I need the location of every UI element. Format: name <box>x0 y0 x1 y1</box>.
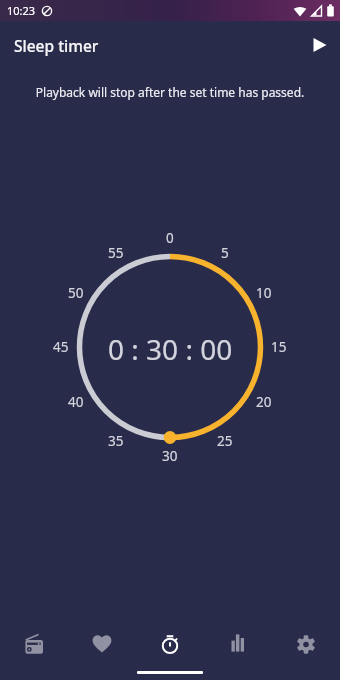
button[interactable] <box>204 612 272 680</box>
staticText: 10:23 <box>7 3 36 18</box>
staticText: 40 <box>68 393 84 411</box>
button[interactable] <box>272 612 340 680</box>
staticText: 50 <box>68 284 84 302</box>
staticText: Sleep timer <box>14 35 99 56</box>
staticText: 25 <box>217 432 233 450</box>
staticText: 30 <box>162 447 178 465</box>
staticText: 55 <box>108 244 124 262</box>
staticText: 10 <box>256 284 272 302</box>
staticText: 35 <box>108 432 124 450</box>
staticText: 45 <box>53 338 69 356</box>
staticText: 0 : 30 : 00 <box>108 330 233 368</box>
staticText: Playback will stop after the set time ha… <box>0 84 340 100</box>
button[interactable] <box>68 612 136 680</box>
staticText: 20 <box>256 393 272 411</box>
staticText: 15 <box>271 338 287 356</box>
button[interactable] <box>300 21 340 69</box>
staticText: 5 <box>221 244 229 262</box>
button[interactable] <box>136 612 204 680</box>
staticText: 0 <box>166 229 174 247</box>
button[interactable] <box>0 612 68 680</box>
